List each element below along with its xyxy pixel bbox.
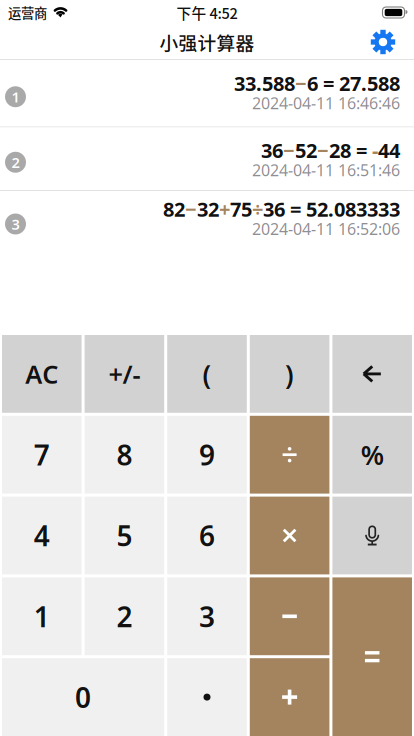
staticText: +	[219, 196, 230, 222]
button[interactable]: 2	[0, 127, 414, 190]
button[interactable]: 9	[167, 416, 247, 494]
button[interactable]: Delete	[332, 335, 412, 413]
staticText: 9	[199, 436, 215, 473]
button[interactable]: 3	[167, 577, 247, 655]
staticText: 3	[199, 598, 215, 635]
button[interactable]: %	[332, 416, 412, 494]
button[interactable]: Decimal point	[167, 658, 247, 736]
button[interactable]: 7	[2, 416, 82, 494]
staticText: =	[351, 137, 372, 163]
staticText: 75	[230, 196, 252, 222]
button[interactable]: 5	[85, 497, 164, 574]
staticText: 33.588	[234, 70, 295, 96]
button[interactable]: AC	[2, 335, 82, 413]
button[interactable]: Multiply	[250, 497, 329, 574]
staticText: 5	[116, 517, 132, 554]
staticText: 7	[34, 436, 50, 473]
button[interactable]: Plus	[250, 658, 329, 736]
staticText: 32	[197, 196, 219, 222]
staticText: 3	[11, 214, 19, 234]
staticText: −	[185, 196, 197, 222]
staticText: 44	[378, 137, 400, 163]
staticText: 2024-04-11 16:52:06	[252, 218, 400, 239]
staticText: ÷	[252, 196, 263, 222]
button[interactable]: +/-	[85, 335, 164, 413]
button[interactable]: 8	[85, 416, 164, 494]
button[interactable]: )	[250, 335, 329, 413]
staticText: 36	[263, 196, 285, 222]
staticText: 52	[295, 137, 317, 163]
staticText: %	[361, 437, 384, 472]
staticText: 1	[34, 598, 50, 635]
staticText: = 52.083333	[285, 196, 400, 222]
button[interactable]: 2	[85, 577, 164, 655]
staticText: 运营商	[8, 3, 47, 22]
staticText: 2024-04-11 16:46:46	[252, 92, 400, 114]
staticText: AC	[25, 357, 58, 391]
staticText: -	[372, 137, 378, 163]
button[interactable]: 1	[0, 60, 414, 126]
button[interactable]: Voice input	[332, 497, 412, 574]
button[interactable]: 1	[2, 577, 82, 655]
staticText: 6	[307, 70, 318, 96]
staticText: 28	[329, 137, 351, 163]
button[interactable]: Minus	[250, 577, 329, 655]
button[interactable]: 4	[2, 497, 82, 574]
staticText: −	[317, 137, 329, 163]
staticText: +/-	[108, 357, 140, 391]
staticText: −	[283, 137, 295, 163]
staticText: 2024-04-11 16:51:46	[252, 159, 400, 181]
staticText: 下午 4:52	[176, 2, 237, 23]
staticText: 2	[116, 598, 132, 635]
button[interactable]: Equals	[332, 577, 412, 736]
staticText: (	[202, 356, 211, 392]
staticText: 8	[116, 436, 132, 473]
staticText: 1	[11, 87, 19, 106]
button[interactable]: 3	[0, 191, 414, 250]
staticText: −	[295, 70, 307, 96]
button[interactable]: 6	[167, 497, 247, 574]
staticText: 82	[163, 196, 185, 222]
staticText: 6	[199, 517, 215, 554]
staticText: = 27.588	[318, 70, 400, 96]
staticText: 小强计算器	[159, 28, 254, 55]
button[interactable]: Divide	[250, 416, 329, 494]
staticText: 0	[75, 678, 91, 716]
button[interactable]: 0	[2, 658, 164, 736]
staticText: 4	[34, 517, 50, 554]
staticText: 36	[261, 137, 283, 163]
button[interactable]: (	[167, 335, 247, 413]
button[interactable]: Settings	[370, 29, 396, 55]
staticText: )	[285, 356, 294, 392]
staticText: 2	[11, 152, 19, 172]
